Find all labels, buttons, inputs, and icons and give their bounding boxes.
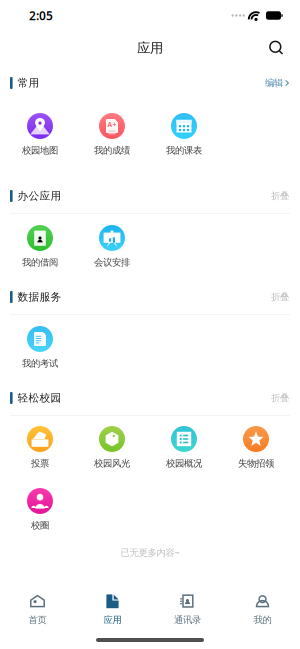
staticText: 折叠 — [271, 392, 289, 404]
staticText: 数据服务 — [18, 290, 62, 303]
staticText: 校圈 — [31, 520, 49, 531]
button[interactable]: 失物招领 — [220, 424, 292, 470]
staticText: 我的考试 — [22, 358, 58, 369]
button[interactable]: 校园概况 — [148, 424, 220, 470]
staticText: 编辑 — [265, 77, 283, 89]
button[interactable]: 通讯录 — [150, 587, 225, 631]
button[interactable]: 应用 — [75, 587, 150, 631]
staticText: 会议安排 — [94, 257, 130, 268]
button[interactable]: 折叠 — [263, 287, 289, 307]
button[interactable]: 校园地图 — [4, 111, 76, 157]
staticText: 已无更多内容~ — [120, 546, 179, 558]
staticText: 常用 — [18, 76, 40, 89]
staticText: A+ — [107, 120, 116, 129]
staticText: 校园概况 — [166, 458, 202, 469]
button[interactable]: 会议安排 — [76, 223, 148, 269]
staticText: 办公应用 — [18, 189, 62, 202]
button[interactable]: 校圈 — [4, 486, 76, 532]
button[interactable]: 我的考试 — [4, 324, 76, 370]
button[interactable]: 我的 — [225, 587, 300, 631]
staticText: 我的成绩 — [94, 145, 130, 156]
button[interactable]: 折叠 — [263, 388, 289, 408]
staticText: 轻松校园 — [18, 391, 62, 404]
staticText: 应用 — [103, 614, 121, 626]
staticText: 失物招领 — [238, 458, 274, 469]
staticText: 折叠 — [271, 291, 289, 303]
button[interactable]: A+ — [76, 111, 148, 157]
button[interactable]: 我的借阅 — [4, 223, 76, 269]
staticText: 我的 — [253, 614, 271, 626]
staticText: 折叠 — [271, 190, 289, 202]
staticText: 首页 — [28, 614, 46, 626]
button[interactable]: 折叠 — [263, 186, 289, 206]
button[interactable]: 搜索 — [261, 33, 292, 62]
staticText: 校园风光 — [94, 458, 130, 469]
staticText: 2:05 — [29, 7, 53, 23]
button[interactable]: 我的课表 — [148, 111, 220, 157]
staticText: 投票 — [31, 458, 49, 469]
staticText: 我的借阅 — [22, 257, 58, 268]
button[interactable]: 校园风光 — [76, 424, 148, 470]
button[interactable]: 编辑 — [257, 73, 289, 93]
staticText: 我的课表 — [166, 145, 202, 156]
staticText: 校园地图 — [22, 145, 58, 156]
button[interactable]: 首页 — [0, 587, 75, 631]
staticText: 应用 — [137, 40, 163, 56]
button[interactable]: 投票 — [4, 424, 76, 470]
staticText: 通讯录 — [174, 614, 201, 626]
